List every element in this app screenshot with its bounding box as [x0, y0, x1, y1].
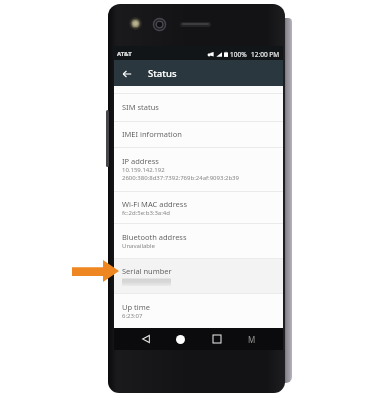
staticText: Status [148, 67, 177, 80]
button[interactable]: IP address [114, 147, 283, 191]
staticText: Bluetooth address [122, 232, 187, 242]
staticText: 100% [230, 50, 247, 59]
staticText: Serial number [122, 266, 172, 276]
button[interactable]: Wi-Fi MAC address [114, 191, 283, 224]
button[interactable]: Bluetooth address [114, 223, 283, 258]
button[interactable]: SIM status [114, 93, 283, 121]
staticText: 6:23:07 [122, 312, 143, 320]
button[interactable]: Back [114, 61, 139, 86]
staticText: SIM status [122, 102, 159, 112]
staticText: Wi-Fi MAC address [122, 199, 188, 209]
button[interactable]: Menu [243, 328, 261, 350]
staticText: Unavailable [122, 242, 155, 250]
staticText: 12:00 PM [251, 50, 280, 59]
button[interactable]: Recent apps [208, 328, 226, 350]
staticText: IP address [122, 156, 159, 166]
button[interactable]: IMEI information [114, 121, 283, 147]
staticText: Up time [122, 302, 150, 312]
staticText: fc:2d:5e:b3:3a:4d [122, 209, 170, 217]
button[interactable]: Home [171, 328, 189, 350]
staticText: 10.159.142.192 [122, 166, 165, 174]
staticText: 2600:380:8d37:7392:769b:24af:9093:2b39 [122, 174, 239, 182]
staticText: AT&T [117, 50, 132, 58]
button[interactable]: Serial number [114, 258, 283, 293]
staticText: M [248, 334, 256, 345]
button[interactable]: Back [137, 328, 155, 350]
button[interactable]: Up time [114, 293, 283, 328]
staticText: IMEI information [122, 129, 182, 139]
